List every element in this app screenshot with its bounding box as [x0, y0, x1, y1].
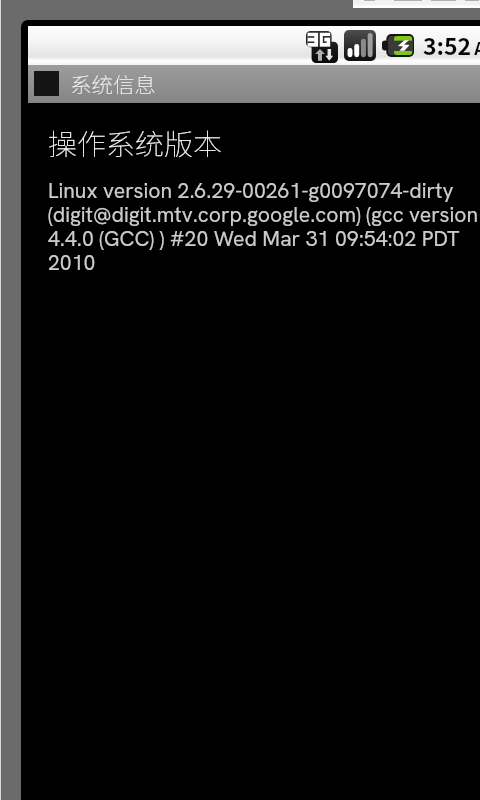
staticText: 3:52 AM — [423, 28, 480, 61]
staticText: 操作系统版本 — [48, 121, 223, 163]
button[interactable] — [28, 65, 480, 103]
staticText: Linux version 2.6.29-00261-g0097074-dirt… — [48, 177, 479, 277]
staticText: 系统信息 — [70, 68, 157, 99]
